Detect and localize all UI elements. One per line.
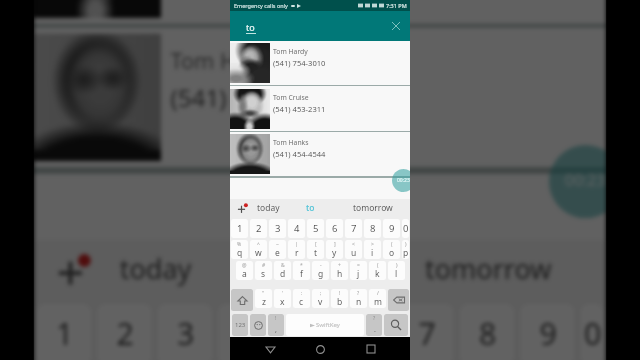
button[interactable]: * [293,261,310,280]
button[interactable]: 4 [288,219,305,238]
button[interactable]: # [255,261,272,280]
button[interactable]: ) [402,240,409,259]
button[interactable]: & [274,261,291,280]
button[interactable]: . [366,314,382,336]
staticText: 5 [313,222,319,235]
button[interactable]: Home [309,338,331,360]
button[interactable]: + [331,261,348,280]
button[interactable]: 6 [339,304,393,360]
button[interactable]: < [345,240,362,259]
button[interactable]: 8 [460,304,514,360]
button[interactable]: = [350,261,367,280]
button[interactable]: tomorrow [371,240,606,298]
button[interactable]: , [268,314,284,336]
button[interactable]: ; [312,289,329,308]
button[interactable]: 9 [520,304,574,360]
button[interactable]: 7 [345,219,362,238]
button[interactable]: today [252,199,284,217]
staticText: # [262,262,266,269]
button[interactable]: ~ [269,240,286,259]
button[interactable]: Tom Cruise [34,0,606,24]
staticText: z [262,296,266,308]
button[interactable]: - [312,261,329,280]
button[interactable]: Clear search [388,18,404,34]
button[interactable]: / [369,289,386,308]
button[interactable]: ^ [250,240,267,259]
button[interactable]: 8 [364,219,381,238]
button[interactable]: ( [369,261,386,280]
staticText: 8 [479,314,498,355]
staticText: ! [275,315,277,322]
staticText: ? [373,315,376,322]
button[interactable]: 4 [218,304,272,360]
staticText: ~ [276,241,279,248]
button[interactable]: Recents [360,338,382,360]
button[interactable]: 7 [399,304,454,360]
button[interactable]: 3 [269,219,286,238]
button[interactable]: Tom Hanks [230,131,410,176]
staticText: ] [334,241,336,248]
button[interactable]: Shift [231,289,253,311]
button[interactable]: ! [331,289,348,308]
button[interactable]: Tom Hardy [230,40,410,85]
button[interactable]: to [205,240,371,298]
staticText: (541) 454-4544 [273,149,326,159]
staticText: ( [391,241,393,248]
button[interactable]: : [293,289,310,308]
button[interactable]: [ [307,240,324,259]
button[interactable]: ? [350,289,367,308]
button[interactable]: Emoji [250,314,266,336]
staticText: today [120,250,193,288]
button[interactable]: to [284,199,336,217]
button[interactable]: Tom Hanks [34,24,606,167]
button[interactable]: " [255,289,272,308]
button[interactable]: Backspace [388,289,409,311]
button[interactable]: ( [383,240,400,259]
button[interactable]: ) [388,261,405,280]
button[interactable]: ] [326,240,343,259]
staticText: & [281,262,285,269]
staticText: h [337,268,343,280]
button[interactable]: 2 [97,304,151,360]
staticText: 3 [275,222,281,235]
staticText: f [300,268,303,280]
button[interactable]: Space [286,314,364,336]
staticText: ( [377,262,379,269]
staticText: SwiftKey [316,321,340,329]
staticText: e [275,247,280,259]
staticText: tomorrow [425,250,552,288]
button[interactable]: 2 [250,219,267,238]
button[interactable]: Symbols [232,314,248,336]
staticText: g [318,268,324,280]
staticText: ' [282,290,284,297]
staticText: 123 [235,321,246,329]
button[interactable]: 5 [279,304,333,360]
staticText: j [357,268,360,280]
button[interactable]: 0 [581,304,603,360]
button[interactable]: @ [236,261,253,280]
button[interactable]: 5 [307,219,324,238]
button[interactable]: > [364,240,381,259]
button[interactable]: 1 [231,219,248,238]
button[interactable]: today [104,240,206,298]
button[interactable]: Add word [230,199,252,217]
button[interactable]: 9 [383,219,400,238]
staticText: = [357,262,360,269]
button[interactable]: 1 [37,304,91,360]
button[interactable]: tomorrow [336,199,410,217]
button[interactable]: Back [259,338,281,360]
button[interactable]: % [231,240,248,259]
button[interactable]: 6 [326,219,343,238]
button[interactable]: | [288,240,305,259]
button[interactable]: ' [274,289,291,308]
staticText: ^ [257,241,260,248]
button[interactable]: 3 [158,304,212,360]
staticText: 4 [294,222,300,235]
staticText: ? [357,290,360,297]
button[interactable]: 0 [402,219,409,238]
button[interactable]: Tom Cruise [230,86,410,131]
button[interactable]: Search [384,314,408,336]
staticText: @ [242,262,247,269]
staticText: (541) 453-2311 [273,104,326,114]
button[interactable]: Add word [34,240,104,298]
